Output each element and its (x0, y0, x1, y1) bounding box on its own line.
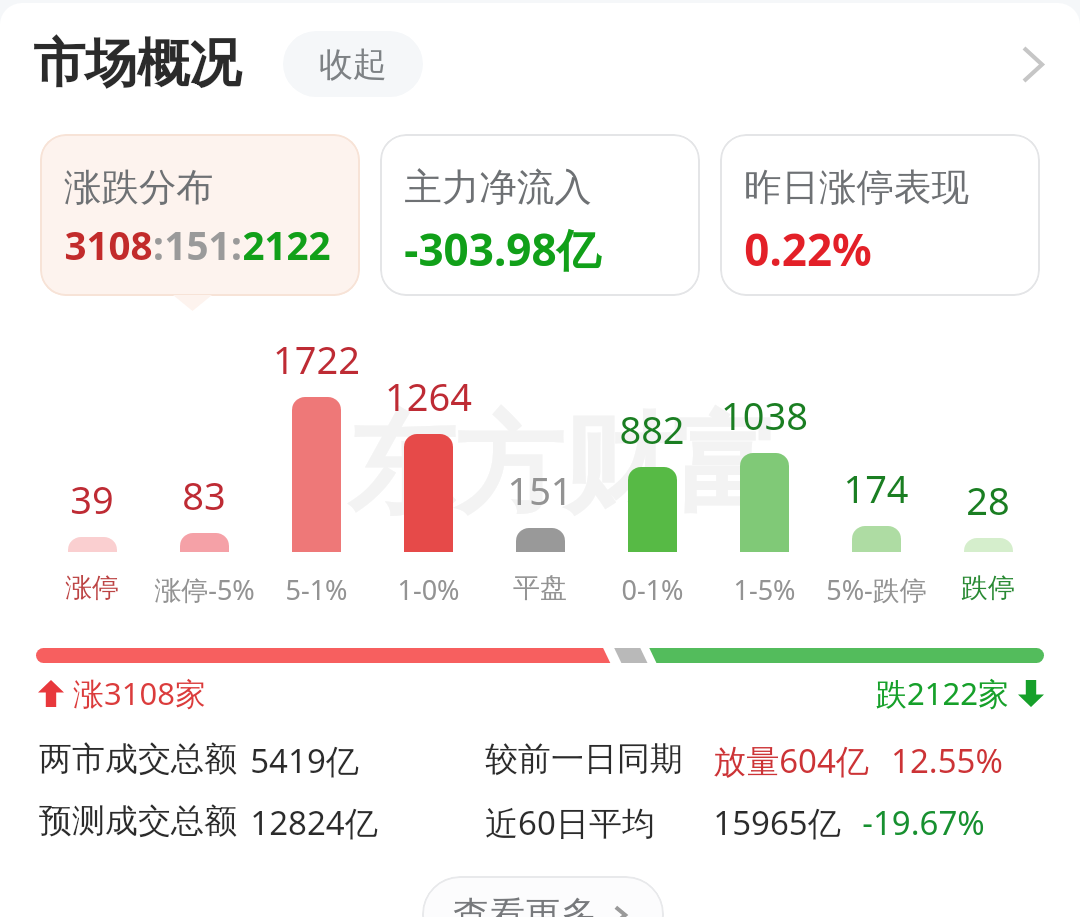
staticText: 83 (182, 469, 226, 521)
staticText: 涨3108家 (73, 672, 206, 714)
button[interactable]: 收起 (283, 31, 423, 97)
staticText: 151 (507, 464, 573, 516)
button[interactable] (36, 330, 148, 605)
staticText: 涨停 (65, 571, 119, 605)
staticText: 1-5% (733, 571, 796, 608)
button[interactable]: 查看更多 (422, 876, 664, 917)
staticText: 5%-跌停 (826, 571, 927, 608)
button[interactable] (708, 330, 820, 605)
button[interactable]: 昨日涨停表现 (720, 134, 1040, 296)
staticText: 0.22% (744, 219, 872, 279)
staticText: 跌停 (961, 571, 1015, 605)
button[interactable] (260, 330, 372, 605)
staticText: -303.98亿 (404, 219, 601, 279)
staticText: 昨日涨停表现 (744, 164, 969, 211)
staticText: 收起 (319, 43, 387, 86)
staticText: 2122 (242, 219, 331, 271)
staticText: 3108 (64, 219, 153, 271)
button[interactable]: 展开更多 (996, 27, 1070, 101)
staticText: 涨跌分布 (64, 164, 214, 211)
button[interactable]: 主力净流入 (380, 134, 700, 296)
staticText: 12824亿 (250, 800, 378, 845)
button[interactable] (372, 330, 484, 605)
staticText: 1264 (385, 370, 472, 422)
staticText: 174 (843, 462, 909, 514)
staticText: 0-1% (621, 571, 684, 608)
button[interactable] (820, 330, 932, 605)
staticText: 放量604亿 (713, 738, 869, 783)
staticText: 东方财富 (347, 398, 779, 534)
button[interactable] (148, 330, 260, 605)
staticText: 市场概况 (33, 31, 241, 97)
staticText: 1038 (721, 389, 808, 441)
staticText: 预测成交总额 (39, 800, 237, 842)
staticText: : (153, 219, 164, 271)
staticText: 12.55% (891, 738, 1003, 783)
staticText: 平盘 (513, 571, 567, 605)
staticText: 15965亿 (713, 800, 841, 845)
staticText: 882 (619, 403, 685, 455)
button[interactable] (596, 330, 708, 605)
button[interactable] (484, 330, 596, 605)
staticText: 39 (70, 473, 114, 525)
staticText: 5419亿 (250, 738, 359, 783)
staticText: 1-0% (397, 571, 460, 608)
staticText: : (231, 219, 242, 271)
staticText: 5-1% (285, 571, 348, 608)
staticText: 跌2122家 (876, 672, 1009, 714)
staticText: -19.67% (862, 800, 985, 845)
staticText: 涨停-5% (154, 571, 255, 608)
button[interactable] (932, 330, 1044, 605)
button[interactable]: 涨跌分布 (40, 134, 360, 296)
staticText: 28 (966, 474, 1010, 526)
staticText: 查看更多 (453, 892, 597, 917)
staticText: 两市成交总额 (39, 738, 237, 780)
staticText: 1722 (273, 333, 360, 385)
staticText: 近60日平均 (485, 800, 655, 845)
staticText: 较前一日同期 (485, 738, 683, 780)
staticText: 151 (164, 219, 231, 271)
staticText: 主力净流入 (404, 164, 592, 211)
